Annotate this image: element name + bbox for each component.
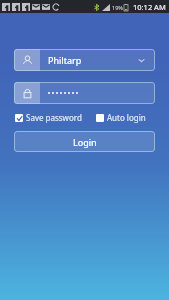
button[interactable]: Show accounts	[133, 52, 149, 68]
staticText: Save password	[26, 112, 82, 123]
staticText: 19%	[112, 4, 123, 11]
staticText: Philtarp	[48, 54, 82, 66]
other: Password	[14, 82, 40, 104]
button[interactable]: Save password	[15, 112, 82, 123]
button[interactable]: Auto login	[96, 112, 146, 123]
button[interactable]: User	[14, 49, 155, 71]
button[interactable]: Password	[14, 82, 155, 104]
staticText: Login	[73, 136, 97, 148]
other: User	[14, 49, 40, 71]
staticText: Auto login	[107, 112, 146, 123]
staticText: 10:12 AM	[133, 2, 166, 12]
button[interactable]: Login	[14, 131, 155, 152]
